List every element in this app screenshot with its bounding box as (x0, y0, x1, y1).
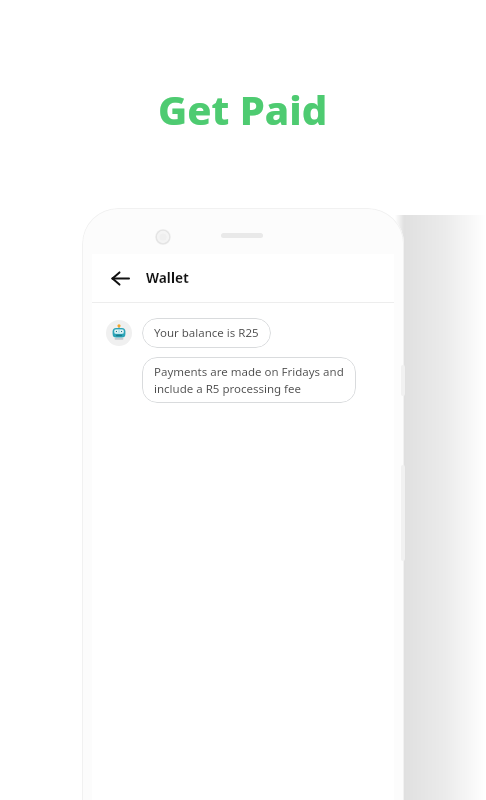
staticText: Payments are made on Fridays and include… (154, 364, 344, 396)
button[interactable]: Your balance is R25 (142, 318, 271, 348)
button[interactable]: Payments are made on Fridays and include… (142, 357, 356, 403)
staticText: Your balance is R25 (154, 325, 259, 341)
button[interactable]: Back (105, 263, 135, 293)
staticText: Get Paid (158, 82, 328, 136)
staticText: Wallet (146, 269, 189, 287)
